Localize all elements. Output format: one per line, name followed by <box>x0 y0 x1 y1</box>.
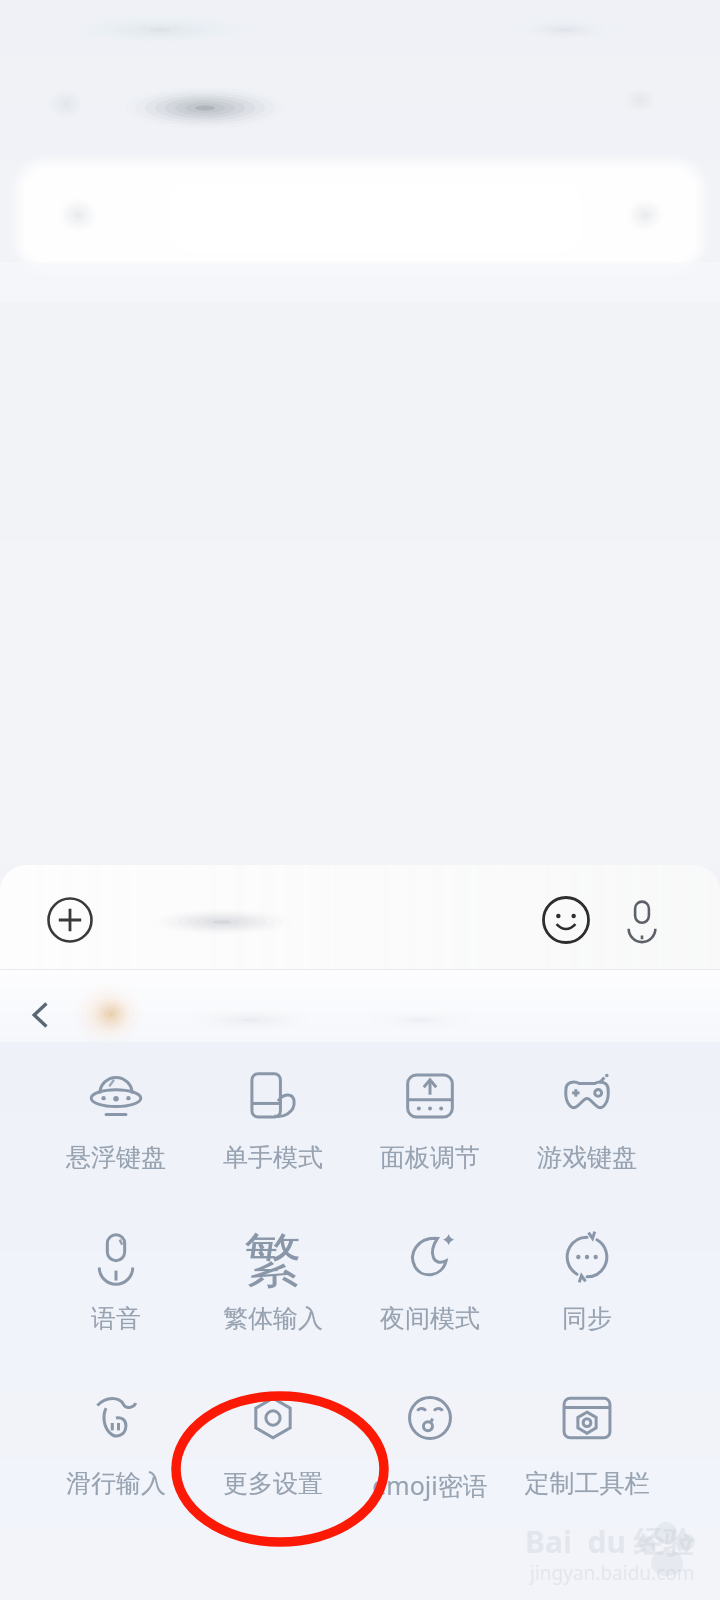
button[interactable] <box>38 1218 194 1340</box>
staticText: 语音 <box>26 1303 206 1334</box>
button[interactable] <box>352 1057 508 1179</box>
button[interactable]: More <box>42 892 98 948</box>
staticText: emoji密语 <box>340 1468 520 1502</box>
staticText: 夜间模式 <box>340 1303 520 1334</box>
button[interactable] <box>195 1057 351 1179</box>
button[interactable] <box>195 1379 351 1501</box>
staticText: 悬浮键盘 <box>26 1142 206 1173</box>
button[interactable] <box>195 1218 351 1340</box>
button[interactable] <box>509 1057 665 1179</box>
button[interactable] <box>352 1379 508 1501</box>
staticText: 同步 <box>497 1303 677 1334</box>
staticText: 定制工具栏 <box>497 1468 677 1499</box>
staticText: 繁体输入 <box>183 1303 363 1334</box>
button[interactable] <box>352 1218 508 1340</box>
button[interactable] <box>38 1057 194 1179</box>
button[interactable] <box>509 1379 665 1501</box>
staticText: 单手模式 <box>183 1142 363 1173</box>
button[interactable] <box>38 1379 194 1501</box>
button[interactable]: Emoji <box>538 892 594 948</box>
button[interactable]: Back <box>14 988 68 1042</box>
button[interactable] <box>509 1218 665 1340</box>
button[interactable]: Voice input <box>614 892 670 948</box>
staticText: 面板调节 <box>340 1142 520 1173</box>
staticText: 更多设置 <box>183 1468 363 1499</box>
staticText: 游戏键盘 <box>497 1142 677 1173</box>
staticText: 滑行输入 <box>26 1468 206 1499</box>
staticText: Bai du 经验 <box>525 1521 694 1562</box>
staticText: 繁 <box>213 1224 333 1297</box>
staticText: jingyan.baidu.com <box>530 1560 695 1586</box>
